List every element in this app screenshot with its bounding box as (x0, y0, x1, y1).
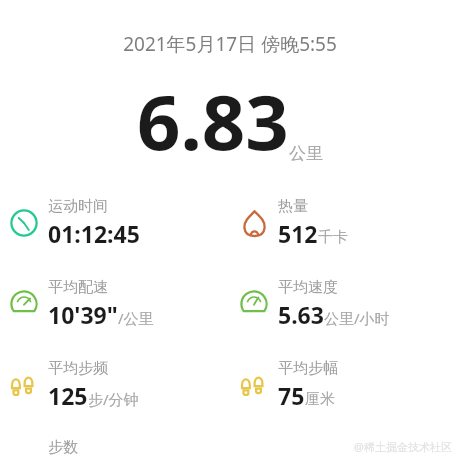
button[interactable]: 平均配速 (0, 278, 230, 330)
staticText: 75 (278, 380, 305, 411)
staticText: 125 (48, 380, 88, 411)
staticText: 平均步频 (48, 359, 108, 378)
staticText: 步数 (48, 438, 78, 457)
staticText: 01:12:45 (48, 218, 140, 249)
staticText: 10'39" (48, 299, 118, 330)
staticText: 厘米 (305, 390, 335, 409)
staticText: 运动时间 (48, 197, 108, 216)
staticText: 512 (278, 218, 318, 249)
button[interactable]: 平均步频 (0, 359, 230, 411)
button[interactable]: 步数 (0, 438, 460, 457)
staticText: 公里 (289, 143, 323, 164)
staticText: 2021年5月17日 傍晚5:55 (0, 31, 460, 57)
button[interactable]: 热量 (230, 197, 460, 249)
staticText: 5.63 (278, 299, 324, 330)
staticText: 平均步幅 (278, 359, 338, 378)
staticText: 千卡 (318, 228, 348, 247)
button[interactable]: 运动时间 (0, 197, 230, 249)
button[interactable]: 平均速度 (230, 278, 460, 330)
staticText: 平均配速 (48, 278, 108, 297)
staticText: 热量 (278, 197, 308, 216)
staticText: 6.83 (137, 69, 289, 173)
button[interactable]: 平均步幅 (230, 359, 460, 411)
staticText: /公里 (118, 308, 154, 328)
staticText: 步/分钟 (88, 389, 139, 409)
staticText: 公里/小时 (324, 308, 390, 328)
staticText: @稀土掘金技术社区 (354, 439, 452, 454)
staticText: 平均速度 (278, 278, 338, 297)
